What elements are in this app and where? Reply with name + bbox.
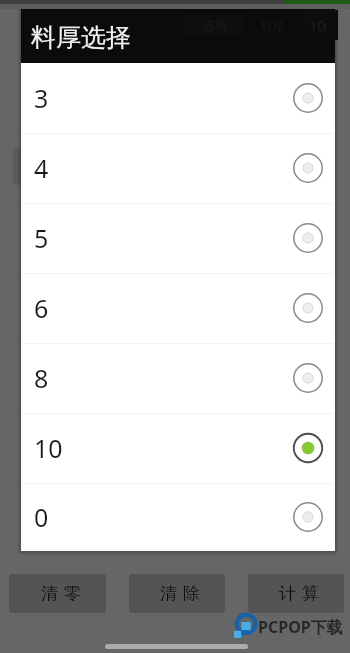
staticText: 3 — [34, 81, 49, 115]
staticText: 计算 — [276, 583, 322, 604]
staticText: 料厚 — [260, 18, 284, 33]
button[interactable]: 10 — [21, 413, 335, 483]
staticText: 0 — [34, 500, 49, 534]
button[interactable]: 8 — [21, 343, 335, 413]
staticText: 8 — [34, 361, 49, 395]
staticText: 清除 — [157, 583, 203, 604]
button[interactable]: 0 — [21, 483, 335, 551]
button[interactable]: 清零 — [9, 574, 106, 613]
staticText: 5 — [34, 221, 49, 255]
staticText: 清零 — [38, 583, 84, 604]
button[interactable]: 3 — [21, 63, 335, 133]
staticText: 10 — [34, 431, 63, 465]
staticText: PCPOP下载 — [258, 616, 343, 638]
button[interactable]: 4 — [21, 133, 335, 203]
button[interactable]: 6 — [21, 273, 335, 343]
staticText: 6 — [34, 291, 49, 325]
button[interactable]: 清除 — [129, 574, 225, 613]
staticText: 料厚选择 — [31, 22, 131, 53]
button[interactable]: 计算 — [248, 574, 344, 613]
staticText: 10 — [309, 15, 327, 35]
staticText: 选项 — [201, 17, 227, 33]
button[interactable]: 5 — [21, 203, 335, 273]
staticText: 4 — [34, 151, 49, 185]
